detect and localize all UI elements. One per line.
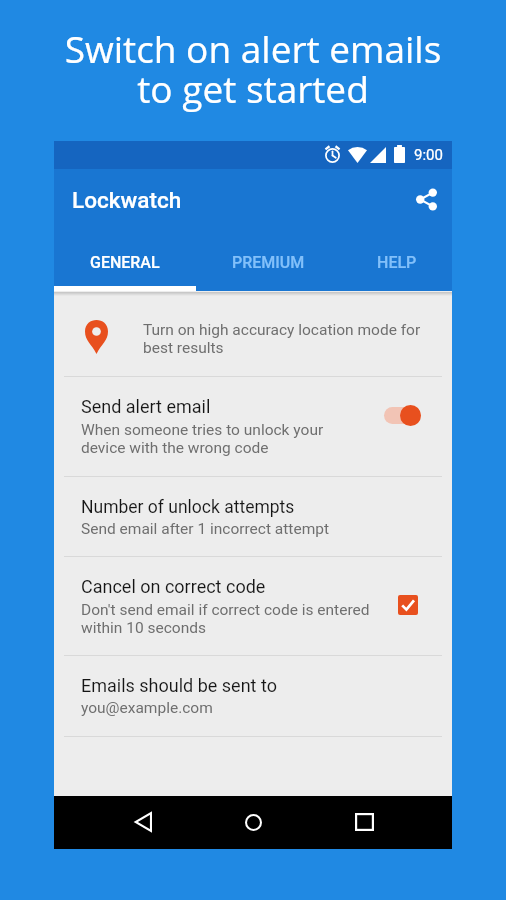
button[interactable]: GENERAL [69,233,181,286]
staticText: Switch on alert emails to get started [0,23,506,114]
staticText: Cancel on correct code [81,576,266,597]
button[interactable]: Back [123,802,163,842]
staticText: Number of unlock attempts [81,497,295,518]
button[interactable]: Share [406,179,446,219]
staticText: When someone tries to unlock your device… [81,421,324,457]
button[interactable]: Recents [344,802,384,842]
staticText: GENERAL [90,253,160,272]
staticText: Send email after 1 incorrect attempt [81,520,330,538]
button[interactable]: Number of unlock attempts [54,476,452,557]
staticText: Send alert email [81,396,211,417]
button[interactable]: Send alert email [54,376,452,476]
button[interactable]: Turn on high accuracy location mode for … [54,292,452,376]
staticText: Don't send email if correct code is ente… [81,601,370,637]
staticText: Emails should be sent to [81,675,277,696]
button[interactable]: HELP [341,233,453,286]
staticText: PREMIUM [232,253,305,272]
button[interactable]: Home [233,802,273,842]
staticText: Lockwatch [72,187,182,213]
button[interactable]: PREMIUM [212,233,324,286]
button[interactable]: Cancel on correct code [54,556,452,655]
button[interactable]: Emails should be sent to [54,655,452,736]
staticText: you@example.com [81,699,213,717]
staticText: Turn on high accuracy location mode for … [143,321,421,357]
staticText: 9:00 [414,146,443,164]
staticText: HELP [377,253,417,272]
